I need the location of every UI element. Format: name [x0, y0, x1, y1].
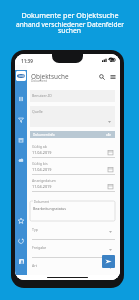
staticText: Gültig bis [32, 161, 48, 166]
button[interactable]: Art [30, 257, 115, 276]
staticText: Bearbeitungsstatus [33, 206, 66, 211]
staticText: Dokumentinfo [33, 133, 55, 137]
button[interactable]: Filter [15, 116, 27, 124]
staticText: 11.04.2019 [32, 150, 52, 155]
staticText: Benutzer-ID [32, 93, 52, 98]
staticText: Freigabe [32, 245, 47, 250]
staticText: 11.04.2019 [32, 184, 52, 189]
staticText: anhand verschiedener Datenfelder [16, 20, 124, 29]
staticText: Quelle [32, 109, 43, 114]
button[interactable]: Freigabe [30, 239, 115, 258]
button[interactable]: Send search [102, 255, 115, 268]
button[interactable]: Gültig bis [30, 158, 115, 175]
staticText: Dokument [31, 79, 47, 83]
staticText: Dokumente per Objektsuche [21, 10, 119, 20]
button[interactable]: Anzeigedatum [30, 175, 115, 192]
button[interactable]: Search [96, 71, 107, 82]
button[interactable]: Objects [15, 95, 27, 103]
staticText: 11:39 [21, 58, 33, 64]
button[interactable]: Dokumentinfo [30, 131, 115, 138]
button[interactable]: Account [19, 259, 24, 264]
button[interactable]: Quelle [30, 106, 115, 127]
staticText: Gültig ab [32, 144, 47, 149]
button[interactable]: Archive [15, 136, 27, 144]
button[interactable]: More options [107, 71, 118, 82]
button[interactable]: App logo [16, 71, 26, 81]
staticText: Anzeigedatum [32, 178, 56, 183]
staticText: alle [106, 133, 112, 137]
button[interactable]: Cloud [15, 156, 27, 164]
staticText: Typ [32, 227, 38, 232]
staticText: suchen [58, 26, 81, 35]
staticText: Dokument [33, 200, 50, 204]
button[interactable]: Favorites [15, 217, 27, 225]
button[interactable]: Gültig ab [30, 141, 115, 158]
staticText: Objektsuche [31, 72, 69, 81]
button[interactable]: Benutzer-ID [30, 90, 115, 102]
button[interactable]: Refresh [15, 237, 27, 245]
staticText: 11.04.2019 [32, 167, 52, 172]
staticText: Art [32, 263, 37, 268]
button[interactable]: Typ [30, 221, 115, 240]
